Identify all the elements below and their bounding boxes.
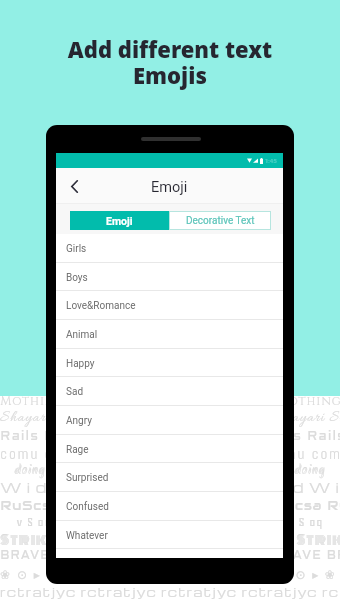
staticText: Boys — [66, 272, 88, 284]
button[interactable]: Animal — [56, 320, 283, 349]
staticText: doing doing doing doing doing doing doin… — [0, 463, 340, 478]
button[interactable]: Angry — [56, 406, 283, 435]
staticText: Angry — [66, 415, 92, 427]
staticText: BRAVE BRAVE BRAVE BRAVE BRAVE BRAVE BRAV… — [0, 550, 340, 562]
staticText: Shayari Shayari Shayari Shayari Shayari … — [0, 409, 340, 427]
staticText: Whatever — [66, 530, 108, 542]
button[interactable]: Boys — [56, 263, 283, 292]
button[interactable]: Emoji — [70, 211, 169, 230]
staticText: Sad — [66, 386, 84, 398]
staticText: Strike Strike Strike Strike Strike Strik… — [0, 530, 340, 548]
staticText: Decorative Text — [186, 215, 255, 227]
button[interactable]: Rage — [56, 435, 283, 464]
staticText: rctratjyc rctratjyc rctratjyc rctratjyc … — [0, 583, 340, 600]
staticText: Love&Romance — [66, 300, 136, 312]
staticText: 1:45 — [265, 157, 277, 164]
staticText: v S oq v S oq v S oq v S oq v S oq v S o… — [0, 516, 340, 529]
button[interactable]: Back — [62, 174, 86, 198]
staticText: Surprised — [66, 472, 109, 484]
button[interactable]: Whatever — [56, 521, 283, 550]
button[interactable]: Confused — [56, 492, 283, 521]
staticText: ❀ ⊙ ▸ ❀ ⊙ ▸ ❀ ⊙ ▸ ❀ ⊙ ▸ ❀ ⊙ ▸ ❀ ⊙ ▸ ❀ ⊙ … — [0, 567, 340, 582]
button[interactable]: Girls — [56, 234, 283, 263]
staticText: Confused — [66, 501, 109, 513]
staticText: Mothing Mothing Mothing Mothing Mothing … — [0, 393, 340, 409]
button[interactable]: Love&Romance — [56, 291, 283, 320]
staticText: RuScsa RuScsa RuScsa RuScsa RuScsa RuScs… — [0, 497, 340, 514]
button[interactable]: Decorative Text — [169, 211, 271, 230]
staticText: Happy — [66, 358, 95, 370]
button[interactable]: Sad — [56, 377, 283, 406]
staticText: Add different text — [0, 34, 340, 64]
staticText: Girls — [66, 243, 87, 255]
staticText: W i d W i d W i d W i d W i d W i d W i … — [0, 478, 340, 496]
staticText: Emojis — [0, 60, 340, 90]
staticText: Emoji — [151, 179, 188, 196]
staticText: Animal — [66, 329, 98, 341]
button[interactable]: Happy — [56, 349, 283, 378]
button[interactable]: Surprised — [56, 463, 283, 492]
staticText: Emoji — [106, 215, 133, 227]
staticText: Rage — [66, 444, 89, 456]
staticText: Rails Rails Rails Rails Rails Rails Rail… — [0, 430, 340, 443]
staticText: comu comu comu comu comu comu comu comu … — [0, 444, 340, 462]
